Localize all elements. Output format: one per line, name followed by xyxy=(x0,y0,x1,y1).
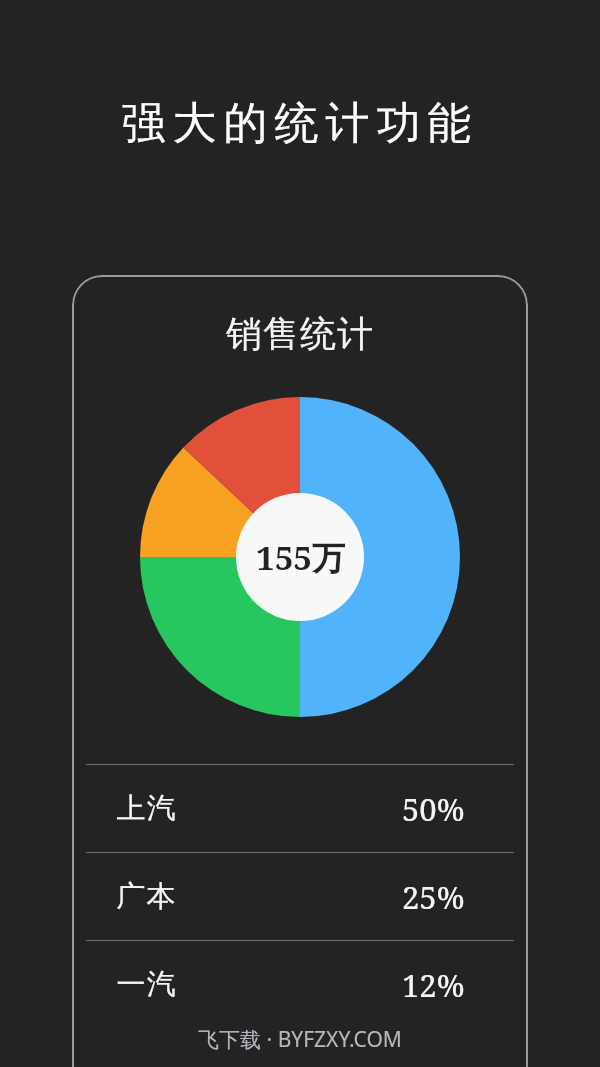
staticText: 12% xyxy=(402,964,465,1006)
staticText: 一汽 xyxy=(116,966,176,1003)
staticText: 飞下载 · BYFZXY.COM xyxy=(0,1025,600,1054)
staticText: 上汽 xyxy=(116,790,176,827)
staticText: 50% xyxy=(402,788,465,830)
staticText: 155万 xyxy=(256,535,345,580)
button[interactable]: 销售统计 xyxy=(72,275,528,1067)
staticText: 广本 xyxy=(116,878,176,915)
button[interactable]: 广本 xyxy=(72,853,528,940)
staticText: 强大的统计功能 xyxy=(0,96,600,151)
staticText: 25% xyxy=(402,876,465,918)
button[interactable]: 上汽 xyxy=(72,765,528,852)
button[interactable]: 一汽 xyxy=(72,941,528,1028)
staticText: 销售统计 xyxy=(72,311,528,356)
